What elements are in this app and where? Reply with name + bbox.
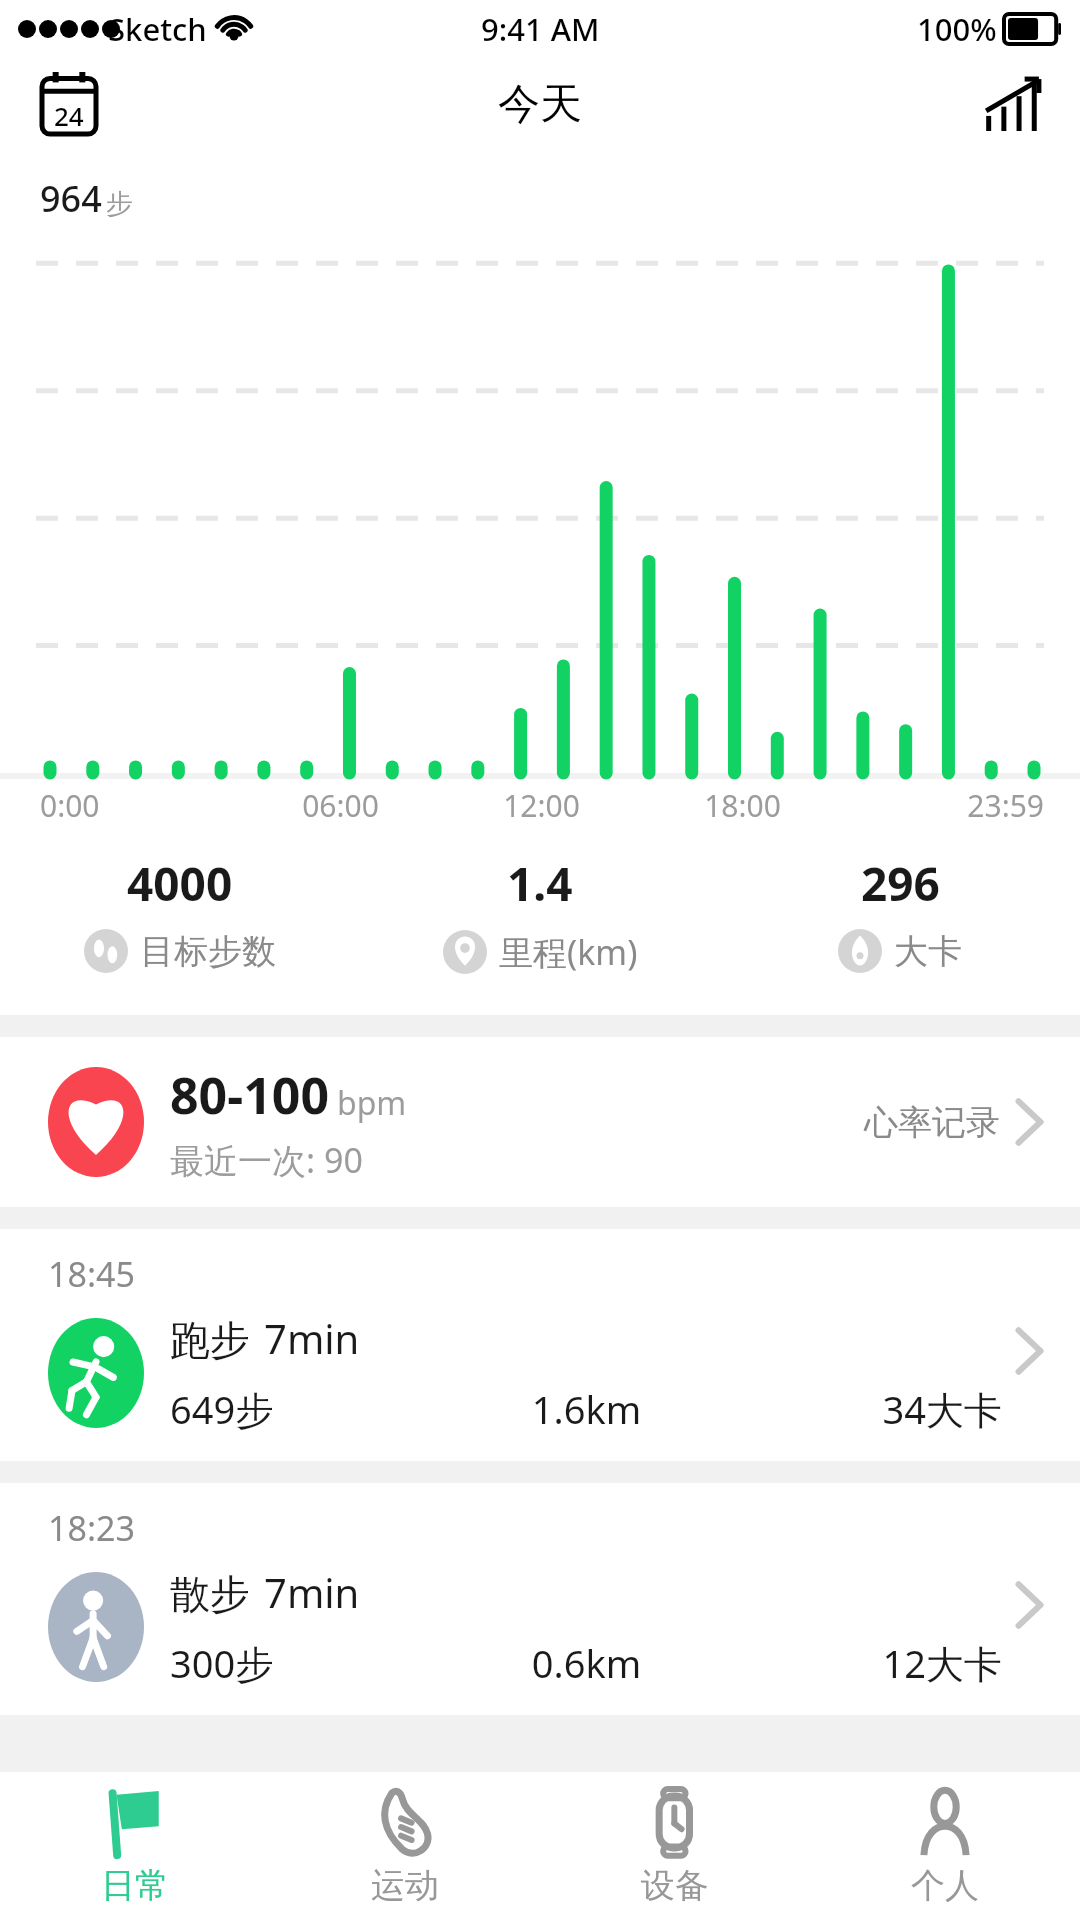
- staticText: 里程(km): [499, 929, 638, 975]
- staticText: 34大卡: [725, 1383, 1002, 1435]
- staticText: 设备: [641, 1864, 709, 1907]
- staticText: 运动: [371, 1864, 439, 1907]
- staticText: 0.6km: [448, 1637, 725, 1689]
- staticText: 1.6km: [448, 1383, 725, 1435]
- staticText: 跑步: [170, 1315, 250, 1365]
- staticText: bpm: [337, 1081, 407, 1125]
- staticText: 1.4: [507, 852, 573, 915]
- staticText: 24: [54, 98, 84, 133]
- staticText: 个人: [911, 1864, 979, 1907]
- staticText: 649步: [170, 1383, 448, 1435]
- staticText: 12大卡: [725, 1637, 1002, 1689]
- staticText: 300步: [170, 1637, 448, 1689]
- button[interactable]: 日常: [0, 1772, 270, 1920]
- staticText: 步: [106, 187, 133, 221]
- staticText: Sketch: [108, 8, 207, 50]
- button[interactable]: Statistics: [976, 69, 1046, 139]
- staticText: 18:45: [48, 1251, 135, 1297]
- staticText: 296: [861, 852, 940, 915]
- button[interactable]: 个人: [810, 1772, 1080, 1920]
- staticText: 0:00: [40, 785, 240, 826]
- staticText: 7min: [264, 1311, 360, 1365]
- staticText: 散步: [170, 1569, 250, 1619]
- staticText: 964: [40, 174, 102, 223]
- staticText: 心率记录: [864, 1101, 1000, 1144]
- staticText: 4000: [127, 852, 233, 915]
- staticText: 大卡: [894, 930, 962, 973]
- button[interactable]: 296: [720, 852, 1080, 973]
- staticText: 06:00: [240, 785, 441, 826]
- staticText: 18:23: [48, 1505, 135, 1551]
- staticText: 18:00: [642, 785, 843, 826]
- staticText: 日常: [101, 1864, 169, 1907]
- button[interactable]: 80-100: [0, 1037, 1080, 1207]
- button[interactable]: 1.4: [360, 852, 720, 975]
- button[interactable]: 4000: [0, 852, 360, 973]
- button[interactable]: 18:45: [0, 1229, 1080, 1461]
- staticText: 80-100: [170, 1061, 329, 1129]
- staticText: 目标步数: [140, 930, 276, 973]
- staticText: 23:59: [843, 785, 1044, 826]
- staticText: 9:41 AM: [481, 8, 600, 50]
- button[interactable]: 运动: [270, 1772, 540, 1920]
- staticText: 7min: [264, 1565, 360, 1619]
- button[interactable]: 设备: [540, 1772, 810, 1920]
- button[interactable]: Calendar: [36, 71, 102, 137]
- staticText: 最近一次: 90: [170, 1137, 363, 1183]
- button[interactable]: 18:23: [0, 1483, 1080, 1715]
- staticText: 今天: [498, 78, 582, 131]
- staticText: 100%: [917, 8, 997, 50]
- staticText: 12:00: [441, 785, 642, 826]
